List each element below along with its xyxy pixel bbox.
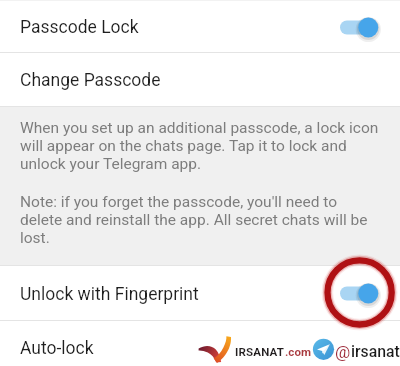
staticText: .com	[285, 345, 311, 359]
staticText: Change Passcode	[20, 70, 161, 91]
staticText: Unlock with Fingerprint	[20, 284, 199, 305]
staticText: Passcode Lock	[20, 17, 139, 38]
staticText: When you set up an additional passcode, …	[20, 119, 380, 173]
staticText: Auto-lock	[20, 338, 94, 359]
staticText: irsanat	[351, 342, 400, 361]
button[interactable]: Auto-lock	[0, 321, 400, 366]
button[interactable]: Toggle Passcode Lock	[340, 5, 386, 49]
button[interactable]: Toggle Unlock with Fingerprint	[340, 271, 386, 315]
staticText: @	[335, 342, 351, 362]
button[interactable]: Unlock with Fingerprint	[0, 266, 400, 320]
button[interactable]: Passcode Lock	[0, 1, 400, 52]
staticText: Note: if you forget the passcode, you'll…	[20, 193, 380, 247]
staticText: IRSANAT	[235, 345, 285, 359]
button[interactable]: Change Passcode	[0, 53, 400, 106]
